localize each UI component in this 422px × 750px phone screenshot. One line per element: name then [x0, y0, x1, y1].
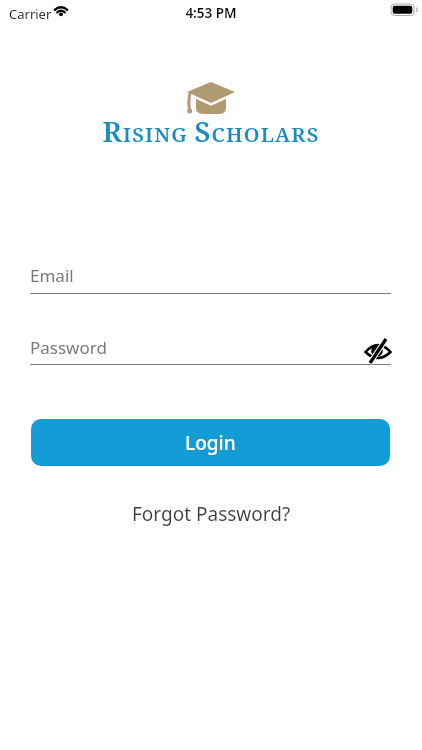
staticText: Carrier	[9, 5, 52, 23]
staticText: Login	[185, 430, 236, 456]
button[interactable]: Forgot Password?	[132, 501, 291, 527]
staticText: RISING SCHOLARS	[0, 112, 422, 150]
button[interactable]	[362, 336, 394, 364]
button[interactable]: Login	[31, 419, 390, 466]
staticText: 4:53 PM	[0, 4, 422, 22]
button[interactable]	[30, 364, 391, 365]
staticText: Email	[30, 264, 74, 287]
staticText: Password	[30, 336, 107, 359]
